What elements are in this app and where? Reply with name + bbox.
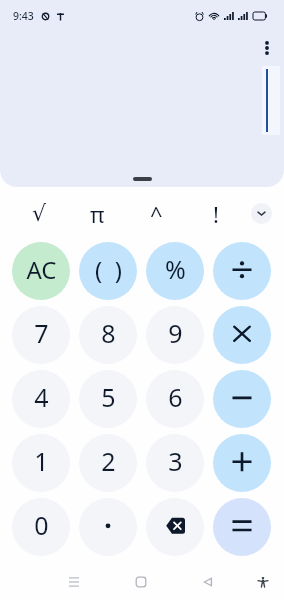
button[interactable]: 7	[12, 306, 70, 364]
button[interactable]: Accessibility	[245, 564, 281, 600]
staticText: 5	[101, 380, 116, 414]
button[interactable]: 8	[79, 306, 137, 364]
button[interactable]: 1	[12, 434, 70, 492]
button[interactable]: Decimal point	[79, 498, 137, 556]
button[interactable]: π	[68, 192, 127, 234]
staticText: AC	[26, 253, 57, 286]
button[interactable]: AC	[12, 242, 70, 300]
button[interactable]: Backspace	[146, 498, 204, 556]
staticText: ^	[150, 199, 163, 229]
staticText: %	[165, 252, 186, 286]
staticText: 0	[34, 508, 49, 542]
button[interactable]: 9	[146, 306, 204, 364]
button[interactable]: Equals	[213, 498, 271, 556]
staticText: !	[213, 199, 219, 229]
staticText: √	[32, 201, 47, 227]
button[interactable]: Minus	[213, 370, 271, 428]
button[interactable]: 2	[79, 434, 137, 492]
button[interactable]: Multiply	[213, 306, 271, 364]
staticText: π	[90, 199, 105, 229]
button[interactable]: 4	[12, 370, 70, 428]
button[interactable]: %	[146, 242, 204, 300]
staticText: 9	[168, 316, 183, 350]
staticText: 7	[34, 316, 49, 350]
button[interactable]: Divide	[213, 242, 271, 300]
staticText: 1	[34, 444, 49, 478]
button[interactable]: More options	[252, 33, 282, 63]
button[interactable]: 0	[12, 498, 70, 556]
button[interactable]: 3	[146, 434, 204, 492]
button[interactable]: 6	[146, 370, 204, 428]
button[interactable]: ^	[127, 192, 186, 234]
staticText: 2	[101, 444, 116, 478]
staticText: 8	[101, 316, 116, 350]
staticText: 3	[168, 444, 183, 478]
staticText: ( )	[95, 253, 122, 286]
button[interactable]: ( )	[79, 242, 137, 300]
button[interactable]: Expand	[251, 203, 272, 224]
staticText: 9:43	[13, 9, 34, 23]
button[interactable]: 5	[79, 370, 137, 428]
button[interactable]: Home	[123, 564, 159, 600]
button[interactable]: √	[10, 192, 68, 234]
staticText: 6	[168, 380, 183, 414]
staticText: 4	[34, 380, 49, 414]
button[interactable]: Back	[190, 564, 226, 600]
button[interactable]: Recents	[56, 564, 92, 600]
button[interactable]: Plus	[213, 434, 271, 492]
button[interactable]: !	[186, 192, 245, 234]
